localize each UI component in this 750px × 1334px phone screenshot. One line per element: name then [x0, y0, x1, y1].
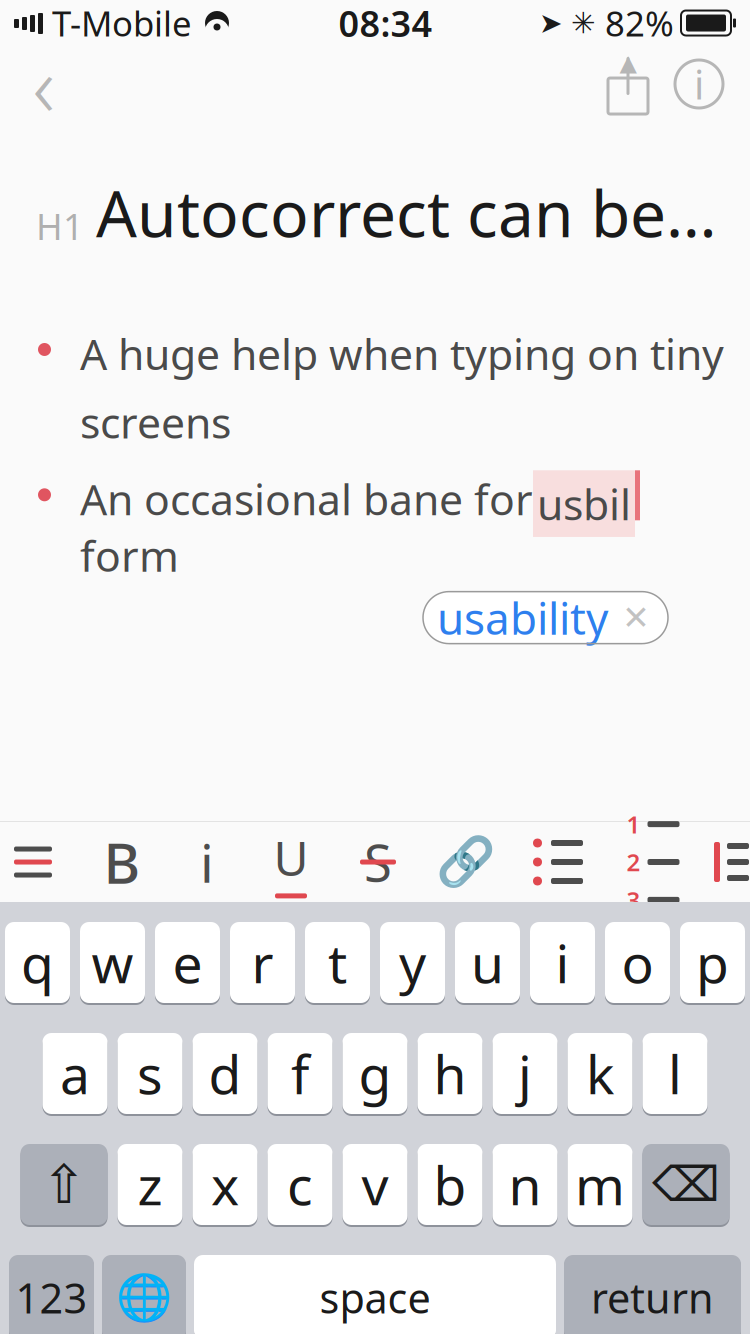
button[interactable]: a — [42, 1031, 107, 1116]
button[interactable]: c — [267, 1142, 332, 1227]
staticText: 08:34 — [338, 0, 432, 47]
staticText: w — [91, 927, 133, 998]
button[interactable]: z — [117, 1142, 182, 1227]
staticText: q — [21, 927, 54, 998]
button[interactable]: f — [267, 1031, 332, 1116]
staticText: T-Mobile — [52, 0, 192, 46]
staticText: 123 — [15, 1270, 87, 1325]
staticText: x — [211, 1149, 239, 1220]
button[interactable]: l — [642, 1031, 707, 1116]
staticText: ✕ — [622, 599, 650, 636]
button[interactable]: ⌫ — [642, 1142, 729, 1227]
button[interactable]: t — [305, 920, 370, 1005]
staticText: usbil — [537, 475, 631, 532]
button[interactable]: 🌐 — [102, 1253, 186, 1334]
staticText: 2 — [626, 846, 640, 878]
staticText: s — [137, 1038, 163, 1109]
staticText: U — [273, 826, 308, 889]
staticText: e — [172, 927, 202, 998]
button[interactable]: Insert link — [435, 822, 497, 902]
staticText: k — [586, 1038, 614, 1109]
button[interactable]: r — [230, 920, 295, 1005]
staticText: v — [361, 1149, 388, 1220]
button[interactable]: d — [192, 1031, 257, 1116]
button[interactable]: s — [117, 1031, 182, 1116]
button[interactable]: o — [605, 920, 670, 1005]
staticText: o — [621, 927, 653, 998]
staticText: i — [694, 57, 704, 110]
button[interactable]: Paragraph style — [2, 822, 64, 902]
staticText: ➤ — [539, 7, 562, 39]
button[interactable]: i — [180, 822, 234, 902]
button[interactable]: space — [194, 1253, 556, 1334]
staticText: g — [358, 1038, 391, 1109]
staticText: Autocorrect can be… — [96, 170, 717, 255]
staticText: ⌫ — [652, 1157, 720, 1212]
button[interactable]: g — [342, 1031, 407, 1116]
staticText: c — [287, 1149, 313, 1220]
staticText: ✳ — [571, 6, 596, 40]
staticText: screens — [80, 394, 231, 450]
button[interactable]: return — [564, 1253, 741, 1334]
button[interactable]: j — [492, 1031, 557, 1116]
button[interactable]: 123 — [9, 1253, 94, 1334]
staticText: u — [471, 927, 504, 998]
button[interactable]: ⇧ — [20, 1142, 107, 1227]
button[interactable]: Block quote — [714, 822, 750, 902]
staticText: p — [696, 927, 729, 998]
button[interactable]: S — [348, 822, 408, 902]
staticText: 3 — [626, 884, 640, 916]
button[interactable]: usability — [423, 592, 668, 644]
staticText: y — [399, 927, 426, 998]
button[interactable]: U — [261, 822, 321, 902]
staticText: r — [251, 927, 273, 998]
button[interactable]: k — [567, 1031, 632, 1116]
button[interactable]: Bulleted list — [524, 822, 592, 902]
button[interactable]: q — [5, 920, 70, 1005]
staticText: m — [575, 1149, 625, 1220]
button[interactable]: i — [530, 920, 595, 1005]
button[interactable]: e — [155, 920, 220, 1005]
staticText: t — [328, 927, 347, 998]
staticText: ⇧ — [41, 1154, 86, 1215]
staticText: h — [433, 1038, 466, 1109]
staticText: l — [668, 1038, 682, 1109]
button[interactable]: w — [80, 920, 145, 1005]
button[interactable]: n — [492, 1142, 557, 1227]
staticText: j — [518, 1038, 532, 1109]
staticText: ▲ — [619, 50, 636, 76]
button[interactable]: m — [567, 1142, 632, 1227]
staticText: H1 — [36, 202, 84, 250]
staticText: i — [555, 927, 569, 998]
button[interactable]: b — [417, 1142, 482, 1227]
staticText: space — [319, 1270, 430, 1325]
button[interactable]: h — [417, 1031, 482, 1116]
button[interactable]: Numbered list — [619, 822, 687, 902]
staticText: 1 — [626, 808, 640, 840]
button[interactable]: x — [192, 1142, 257, 1227]
staticText: 🔗 — [436, 835, 496, 889]
staticText: usability — [437, 588, 608, 647]
staticText: S — [364, 828, 392, 896]
button[interactable]: v — [342, 1142, 407, 1227]
staticText: An occasional bane for form — [80, 470, 533, 584]
button[interactable]: p — [680, 920, 745, 1005]
button[interactable]: B — [91, 822, 153, 902]
staticText: b — [433, 1149, 466, 1220]
staticText: z — [137, 1149, 162, 1220]
button[interactable]: Back — [0, 46, 88, 122]
button[interactable]: Information — [660, 46, 738, 122]
staticText: n — [508, 1149, 541, 1220]
button[interactable]: Share — [596, 46, 660, 122]
staticText: ‹ — [32, 27, 55, 141]
staticText: 82% — [605, 0, 674, 46]
staticText: a — [60, 1038, 90, 1109]
button[interactable]: u — [455, 920, 520, 1005]
staticText: 🌐 — [116, 1272, 172, 1323]
staticText: f — [291, 1038, 309, 1109]
staticText: A huge help when typing on tiny — [80, 325, 724, 382]
staticText: B — [103, 825, 140, 899]
button[interactable]: y — [380, 920, 445, 1005]
staticText: return — [591, 1270, 714, 1325]
staticText: i — [200, 827, 214, 897]
